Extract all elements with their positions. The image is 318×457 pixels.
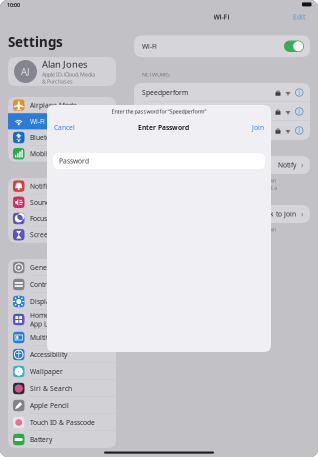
button[interactable]: Touch ID & Passcode: [8, 414, 116, 431]
staticText: 10:00: [7, 1, 20, 9]
button[interactable]: Battery: [8, 431, 116, 448]
button[interactable]: Ask to Join: [134, 205, 310, 223]
staticText: Cancel: [54, 123, 75, 132]
staticText: Known networks will be joined automatica…: [142, 226, 276, 247]
button[interactable]: Speedperform_5G: [134, 102, 310, 121]
button[interactable]: Speedperform: [134, 83, 310, 102]
button[interactable]: Notifications: [8, 178, 116, 194]
staticText: Notifications: [30, 182, 69, 191]
staticText: ›: [301, 209, 303, 219]
staticText: Siri & Search: [30, 384, 72, 393]
staticText: Join: [252, 123, 264, 132]
button[interactable]: Focus: [8, 210, 116, 227]
staticText: Apple Pencil: [30, 401, 69, 410]
button[interactable]: Multitasking & Gestures: [8, 329, 116, 346]
staticText: i: [298, 126, 300, 135]
staticText: Speedperform_5G: [142, 107, 200, 116]
button[interactable]: General: [8, 259, 116, 276]
staticText: Notify: [278, 161, 296, 169]
staticText: i: [298, 88, 300, 97]
staticText: Airplane Mode: [30, 101, 77, 110]
staticText: Control Centre: [30, 280, 76, 289]
button[interactable]: Password: [53, 153, 265, 169]
staticText: Settings: [8, 33, 63, 51]
staticText: Touch ID & Passcode: [30, 418, 95, 427]
button[interactable]: [134, 121, 310, 140]
button[interactable]: Wallpaper: [8, 363, 116, 380]
staticText: Speedperform: [142, 88, 188, 97]
staticText: Password: [59, 157, 89, 165]
staticText: Sounds: [30, 198, 53, 207]
staticText: Apple ID, iCloud, Media & Purchases: [42, 71, 95, 85]
button[interactable]: Display & Brightness: [8, 293, 116, 310]
staticText: Bluetooth: [30, 133, 60, 142]
button[interactable]: Sounds: [8, 194, 116, 210]
button[interactable]: Edit: [293, 13, 305, 21]
staticText: Enter Password: [138, 123, 189, 132]
staticText: AJ: [21, 65, 30, 78]
staticText: Edit: [293, 13, 305, 21]
staticText: Alan Jones: [42, 58, 87, 70]
button[interactable]: Screen Time: [8, 227, 116, 243]
staticText: Home Screen & App Library: [30, 311, 80, 328]
staticText: Accessibility: [30, 350, 67, 359]
staticText: Wi-Fi: [30, 117, 45, 126]
staticText: Wallpaper: [30, 367, 63, 376]
button[interactable]: Mobile Data: [8, 146, 116, 162]
staticText: Enter the password for “Speedperform”: [111, 108, 206, 115]
staticText: i: [298, 107, 300, 116]
staticText: NETWORKS: [142, 71, 170, 78]
button[interactable]: Wi-Fi: [8, 113, 116, 129]
button[interactable]: Accessibility: [8, 346, 116, 363]
button[interactable]: Home Screen & App Library: [8, 310, 116, 329]
button[interactable]: Bluetooth: [8, 129, 116, 146]
staticText: Display & Brightness: [30, 297, 95, 306]
button[interactable]: Join: [252, 123, 264, 132]
staticText: General: [30, 263, 56, 272]
staticText: Focus: [30, 214, 47, 223]
staticText: Known networks will be joined automatica…: [142, 177, 277, 198]
staticText: Wi-Fi: [213, 13, 229, 21]
staticText: Ask to Join: [263, 210, 296, 218]
button[interactable]: Airplane Mode: [8, 97, 116, 113]
staticText: Battery: [30, 435, 52, 444]
staticText: Multitasking & Gestures: [30, 333, 106, 342]
staticText: ›: [301, 160, 303, 170]
button[interactable]: Cancel: [54, 123, 75, 132]
button[interactable]: Notify: [134, 156, 310, 174]
staticText: Wi-Fi: [142, 42, 157, 51]
staticText: Screen Time: [30, 230, 70, 239]
button[interactable]: Apple Pencil: [8, 397, 116, 414]
button[interactable]: Control Centre: [8, 276, 116, 293]
button[interactable]: AJ: [8, 57, 116, 86]
button[interactable]: Siri & Search: [8, 380, 116, 397]
staticText: Mobile Data: [30, 149, 69, 158]
